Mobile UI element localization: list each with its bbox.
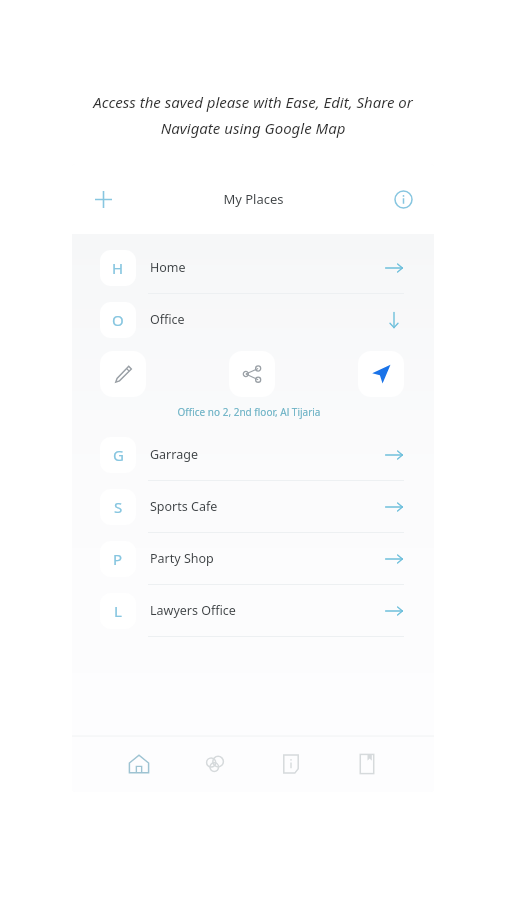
button[interactable]: P [72, 533, 434, 584]
button[interactable]: Home [112, 737, 166, 791]
button[interactable]: Info [264, 737, 318, 791]
staticText: Garrage [150, 446, 198, 463]
button[interactable]: Edit [100, 351, 146, 397]
button[interactable]: G [72, 429, 434, 480]
button[interactable]: Share [229, 351, 275, 397]
button[interactable]: Cloud [188, 737, 242, 791]
staticText: P [113, 549, 123, 569]
staticText: L [114, 601, 122, 621]
button[interactable]: L [72, 585, 434, 636]
staticText: G [113, 445, 124, 465]
button[interactable]: Navigate [358, 351, 404, 397]
staticText: O [112, 310, 124, 330]
staticText: Access the saved please with Ease, Edit,… [26, 92, 480, 139]
staticText: Office no 2, 2nd floor, Al Tijaria [72, 405, 426, 419]
staticText: Lawyers Office [150, 602, 236, 619]
staticText: My Places [223, 190, 284, 208]
button[interactable]: S [72, 481, 434, 532]
staticText: Party Shop [150, 550, 214, 567]
staticText: S [114, 497, 123, 517]
button[interactable]: O [72, 294, 434, 345]
staticText: Office [150, 311, 185, 328]
button[interactable]: H [72, 242, 434, 293]
button[interactable]: Documents [340, 737, 394, 791]
button[interactable]: Add place [86, 182, 120, 216]
staticText: Sports Cafe [150, 498, 218, 515]
button[interactable]: Info [386, 182, 420, 216]
staticText: H [112, 258, 124, 278]
staticText: Home [150, 259, 186, 276]
